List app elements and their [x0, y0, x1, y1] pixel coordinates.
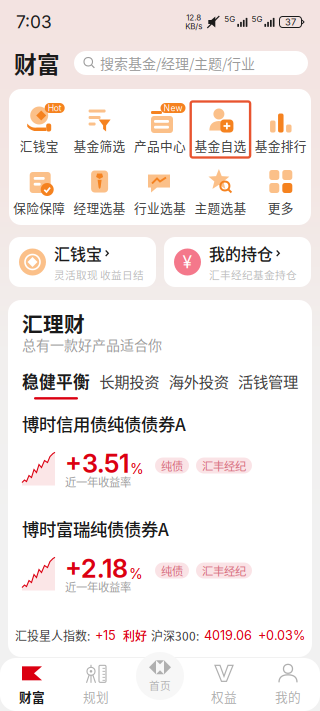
staticText: 5G — [251, 14, 262, 24]
button[interactable]: 博时富瑞纯债债券A — [22, 504, 298, 609]
staticText: 汇丰经纪 — [202, 457, 246, 474]
staticText: 37 — [285, 16, 296, 28]
staticText: 搜索基金/经理/主题/行业 — [100, 53, 255, 73]
staticText: 博时富瑞纯债债券A — [22, 516, 169, 541]
staticText: 财富 — [14, 47, 60, 79]
staticText: 基金排行 — [255, 136, 307, 155]
staticText: 博时信用债纯债债券A — [22, 411, 186, 436]
staticText: 基金自选 — [194, 136, 246, 155]
button[interactable]: 搜索基金/经理/主题/行业 — [74, 51, 308, 75]
button[interactable]: 主题选基 — [190, 166, 251, 217]
staticText: 汇钱宝 — [20, 136, 59, 155]
staticText: 权益 — [211, 687, 237, 706]
staticText: 汇理财 — [22, 308, 85, 338]
button[interactable]: 基金自选 — [190, 104, 251, 155]
staticText: 汇丰经纪 — [202, 562, 246, 579]
staticText: 我的 — [275, 687, 301, 706]
button[interactable]: 我的 — [256, 658, 320, 711]
button[interactable]: 经理选基 — [69, 166, 130, 217]
staticText: 我的持仓 — [209, 242, 273, 265]
button[interactable]: 规划 — [64, 658, 128, 711]
button[interactable]: 权益 — [192, 658, 256, 711]
button[interactable]: ¥ — [164, 237, 311, 287]
staticText: 更多 — [268, 198, 294, 217]
staticText: KB/s — [185, 21, 202, 31]
button[interactable]: 首页 — [136, 652, 184, 700]
staticText: 汇投星人指数: — [15, 627, 90, 644]
button[interactable]: 基金排行 — [251, 104, 311, 155]
staticText: 财富 — [19, 687, 45, 706]
staticText: 长期投资 — [99, 370, 159, 392]
staticText: 利好 — [123, 627, 147, 644]
staticText: 灵活取现 收益日结 — [54, 267, 144, 282]
button[interactable]: 稳健平衡 — [22, 369, 90, 399]
button[interactable]: 财富 — [0, 658, 64, 711]
staticText: Hot — [48, 103, 62, 113]
button[interactable]: 保险保障 — [9, 166, 69, 217]
staticText: 汇钱宝 — [54, 242, 102, 265]
staticText: 活钱管理 — [238, 370, 298, 392]
staticText: 基金筛选 — [74, 136, 126, 155]
staticText: New — [163, 103, 182, 113]
staticText: 7:03 — [16, 11, 52, 32]
staticText: +2.18 — [65, 553, 128, 584]
staticText: 12.8 — [186, 13, 201, 22]
staticText: 近一年收益率 — [65, 473, 131, 490]
staticText: ¥ — [182, 251, 192, 272]
staticText: 行业选基 — [134, 198, 186, 217]
staticText: +3.51 — [65, 448, 129, 479]
button[interactable]: 汇钱宝 — [9, 237, 156, 287]
button[interactable]: 长期投资 — [99, 370, 159, 399]
staticText: 海外投资 — [169, 370, 229, 392]
staticText: % — [129, 565, 143, 582]
staticText: 纯债 — [161, 562, 183, 579]
button[interactable]: 活钱管理 — [238, 370, 298, 399]
staticText: 5G — [224, 14, 235, 24]
staticText: 规划 — [83, 687, 109, 706]
staticText: 总有一款好产品适合你 — [22, 334, 162, 355]
staticText: 首页 — [149, 677, 171, 693]
button[interactable]: 基金筛选 — [69, 104, 130, 155]
staticText: 主题选基 — [194, 198, 246, 217]
staticText: 汇丰经纪基金持仓 — [209, 267, 297, 282]
staticText: 产品中心 — [134, 136, 186, 155]
staticText: +0.03% — [258, 628, 305, 643]
staticText: +15 — [95, 628, 116, 643]
button[interactable]: Hot — [9, 104, 69, 155]
staticText: 经理选基 — [74, 198, 126, 217]
button[interactable]: 行业选基 — [130, 166, 190, 217]
staticText: 沪深300: — [151, 627, 199, 644]
button[interactable]: 博时信用债纯债债券A — [22, 399, 298, 504]
staticText: 4019.06 — [204, 628, 252, 643]
button[interactable]: 更多 — [251, 166, 311, 217]
button[interactable]: New — [130, 104, 190, 155]
staticText: 稳健平衡 — [22, 369, 90, 393]
button[interactable]: 海外投资 — [169, 370, 229, 399]
staticText: 近一年收益率 — [65, 578, 131, 595]
staticText: 保险保障 — [13, 198, 65, 217]
staticText: 纯债 — [161, 457, 183, 474]
staticText: % — [130, 460, 144, 477]
